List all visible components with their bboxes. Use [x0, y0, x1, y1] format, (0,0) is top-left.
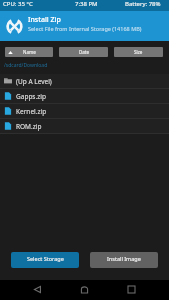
button[interactable]: Install Image — [90, 252, 158, 268]
button[interactable]: Home — [75, 280, 93, 298]
button[interactable]: Gapps.zip — [4, 89, 169, 103]
staticText: CPU: 35 °C — [3, 0, 33, 8]
button[interactable]: (Up A Level) — [4, 74, 169, 88]
button[interactable]: Size — [114, 47, 163, 57]
staticText: Size — [134, 49, 143, 55]
staticText: Select Storage — [27, 255, 64, 262]
staticText: (Up A Level) — [16, 77, 52, 86]
button[interactable]: ROM.zip — [4, 119, 169, 133]
button[interactable]: Back — [28, 280, 46, 298]
button[interactable]: Date — [59, 47, 108, 57]
staticText: Battery: 78% — [125, 0, 161, 8]
staticText: Gapps.zip — [16, 92, 46, 101]
button[interactable]: Kernel.zip — [4, 104, 169, 118]
staticText: Select File from Internal Storage (14168… — [28, 25, 142, 32]
staticText: Kernel.zip — [16, 107, 47, 116]
button[interactable]: Select Storage — [11, 252, 79, 268]
staticText: ROM.zip — [16, 122, 42, 131]
button[interactable]: Recent apps — [122, 280, 140, 298]
staticText: /sdcard/Download — [4, 62, 48, 69]
staticText: Date — [79, 49, 89, 55]
staticText: Name — [23, 49, 36, 55]
staticText: 7:38 PM — [75, 0, 98, 8]
button[interactable]: Name — [5, 47, 53, 57]
staticText: Install Zip — [28, 15, 61, 25]
staticText: Install Image — [107, 255, 141, 262]
